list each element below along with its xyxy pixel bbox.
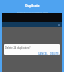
staticText: Duplicate <box>25 4 40 8</box>
staticText: scanning your gallery now <box>17 10 48 13</box>
staticText: Delete 24 duplicates? <box>5 46 31 49</box>
button[interactable]: DELETE <box>50 52 60 55</box>
button[interactable]: More <box>58 24 60 26</box>
button[interactable]: Delete 24 duplicates? <box>4 44 60 55</box>
button[interactable]: CANCEL <box>37 52 49 55</box>
